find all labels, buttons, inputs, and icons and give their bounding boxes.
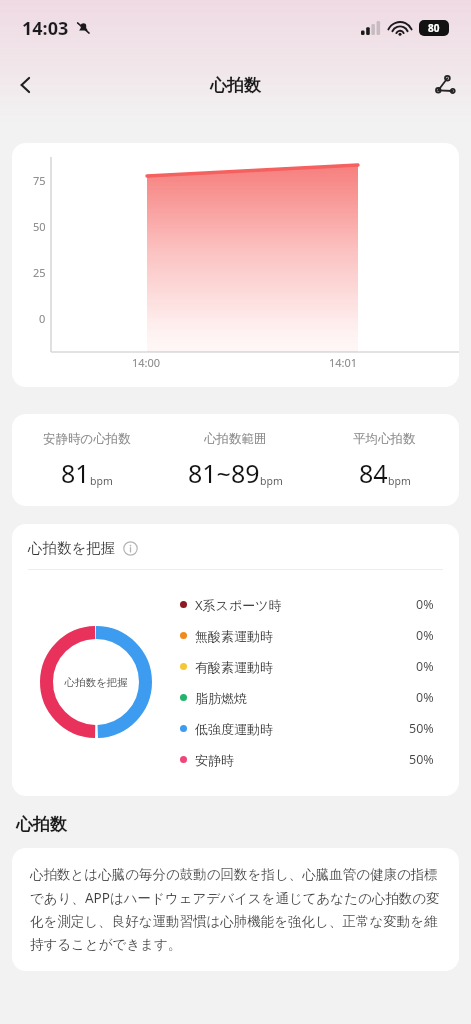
staticText: 心拍数: [210, 75, 261, 96]
staticText: 低強度運動時: [195, 721, 273, 737]
staticText: bpm: [260, 474, 283, 488]
staticText: 50%: [409, 720, 434, 737]
button[interactable]: 75: [12, 143, 459, 387]
staticText: 有酸素運動時: [195, 659, 273, 675]
staticText: 50%: [409, 751, 434, 768]
button[interactable]: Share: [419, 59, 471, 111]
staticText: 0%: [416, 689, 434, 706]
staticText: 81~89: [188, 456, 260, 490]
button[interactable]: 有酸素運動時: [180, 651, 434, 682]
staticText: 50: [33, 219, 46, 234]
staticText: 心拍数を把握: [64, 676, 128, 689]
staticText: 心拍数を把握: [28, 539, 116, 557]
staticText: 14:03: [22, 16, 69, 41]
staticText: 心拍数: [16, 814, 67, 835]
staticText: 25: [33, 265, 46, 280]
staticText: bpm: [90, 474, 113, 488]
button[interactable]: 心拍数を把握: [12, 524, 459, 796]
staticText: 0: [39, 311, 46, 326]
staticText: 安静時の心拍数: [43, 431, 131, 447]
staticText: X系スポーツ時: [195, 596, 282, 614]
staticText: 84: [359, 456, 388, 490]
staticText: 14:00: [132, 355, 161, 370]
staticText: 0%: [416, 658, 434, 675]
staticText: 0%: [416, 627, 434, 644]
staticText: 無酸素運動時: [195, 628, 273, 644]
staticText: 80: [428, 21, 440, 35]
button[interactable]: Back: [0, 59, 52, 111]
button[interactable]: 安静時の心拍数: [12, 414, 459, 506]
staticText: 安静時: [195, 752, 234, 768]
staticText: 心拍数とは心臓の毎分の鼓動の回数を指し、心臓血管の健康の指標であり、APPはハー…: [30, 866, 441, 953]
staticText: 心拍数範囲: [204, 431, 267, 447]
button[interactable]: 安静時: [180, 744, 434, 775]
button[interactable]: 脂肪燃焼: [180, 682, 434, 713]
staticText: 75: [33, 173, 46, 188]
button[interactable]: 心拍数とは心臓の毎分の鼓動の回数を指し、心臓血管の健康の指標であり、APPはハー…: [12, 848, 459, 971]
staticText: 81: [61, 456, 90, 490]
button[interactable]: 低強度運動時: [180, 713, 434, 744]
staticText: 0%: [416, 596, 434, 613]
staticText: 平均心拍数: [353, 431, 416, 447]
staticText: bpm: [388, 474, 411, 488]
button[interactable]: 無酸素運動時: [180, 620, 434, 651]
staticText: 14:01: [329, 355, 358, 370]
button[interactable]: X系スポーツ時: [180, 589, 434, 620]
staticText: 脂肪燃焼: [195, 690, 247, 706]
